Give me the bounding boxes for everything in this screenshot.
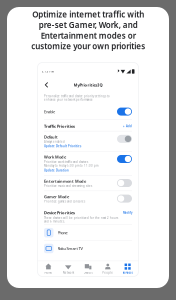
- staticText: Update Default Priorities: [44, 144, 81, 148]
- button[interactable]: Services: [118, 261, 137, 276]
- staticText: Device Priorities: [44, 210, 75, 215]
- button[interactable]: Home: [38, 261, 58, 276]
- button[interactable]: Devices: [78, 261, 98, 276]
- staticText: Gamer Mode: [44, 194, 69, 199]
- staticText: Entertainment Mode: [44, 178, 86, 184]
- staticText: These devices will be prioritized for th…: [44, 216, 118, 223]
- staticText: Phone: [57, 230, 67, 235]
- staticText: Always enabled: [44, 140, 65, 143]
- staticText: Default: [44, 134, 58, 140]
- staticText: Work Mode: [44, 154, 66, 160]
- staticText: Prioritize games and consoles: [44, 200, 85, 203]
- button[interactable]: Default: [44, 131, 132, 151]
- button[interactable]: Work Mode: [44, 151, 132, 175]
- button[interactable]: Gamer Mode: [44, 191, 132, 206]
- staticText: Network: [63, 271, 74, 274]
- button[interactable]: Network: [58, 261, 78, 276]
- staticText: Home: [44, 271, 52, 274]
- staticText: Services: [123, 271, 133, 274]
- staticText: 6:13 PM: [41, 70, 53, 73]
- staticText: Enable: [44, 109, 55, 114]
- staticText: Traffic Priorities: [44, 124, 75, 129]
- button[interactable]: + Add: [123, 124, 132, 128]
- button[interactable]: Back: [40, 80, 53, 90]
- staticText: People: [102, 271, 113, 274]
- button[interactable]: Phone: [44, 225, 132, 240]
- staticText: Monday to Friday 5:00 pm to 11:00 pm: [44, 164, 98, 167]
- staticText: Roku Smart TV: [57, 246, 82, 251]
- button[interactable]: Modify: [123, 211, 132, 214]
- staticText: Modify: [123, 211, 132, 214]
- staticText: Update Duration: [44, 169, 69, 172]
- staticText: Optimize internet traffic with pre-set G…: [31, 9, 145, 51]
- staticText: Devices: [83, 271, 92, 274]
- staticText: Personalize traffic and device priority …: [44, 94, 110, 102]
- staticText: Prioritize music and streaming sites: [44, 184, 92, 188]
- button[interactable]: Roku Smart TV: [44, 241, 132, 256]
- staticText: MyPrioritiesIQ: [73, 82, 102, 88]
- button[interactable]: People: [98, 261, 118, 276]
- button[interactable]: Entertainment Mode: [44, 175, 132, 191]
- staticText: Prioritize work traffic and devices: [44, 160, 88, 164]
- staticText: + Add: [123, 124, 132, 128]
